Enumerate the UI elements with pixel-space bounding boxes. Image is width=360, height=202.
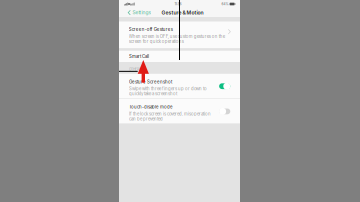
staticText: Swipe with three fingers up or down to q… xyxy=(129,86,207,96)
staticText: Gesture Screenshot xyxy=(129,79,172,84)
button[interactable]: Settings xyxy=(119,8,154,17)
staticText: If the lock screen is covered, misoperat… xyxy=(129,111,211,121)
button[interactable]: Smart Call xyxy=(119,51,240,62)
staticText: Smart Call xyxy=(129,54,149,59)
staticText: 64% xyxy=(221,2,228,6)
staticText: Touch-disable mode xyxy=(129,104,173,110)
button[interactable]: Screen-off Gestures xyxy=(119,21,240,48)
staticText: Screen-off Gestures xyxy=(129,27,173,32)
button[interactable]: Gesture Screenshot xyxy=(119,74,240,98)
staticText: 11:36 xyxy=(174,2,181,6)
staticText: OTHERS xyxy=(129,67,141,71)
staticText: Gesture & Motion xyxy=(161,9,203,16)
button[interactable]: Touch-disable mode xyxy=(119,99,240,123)
staticText: When screen is OFF, use custom gestures … xyxy=(129,34,225,44)
staticText: Settings xyxy=(132,10,151,15)
